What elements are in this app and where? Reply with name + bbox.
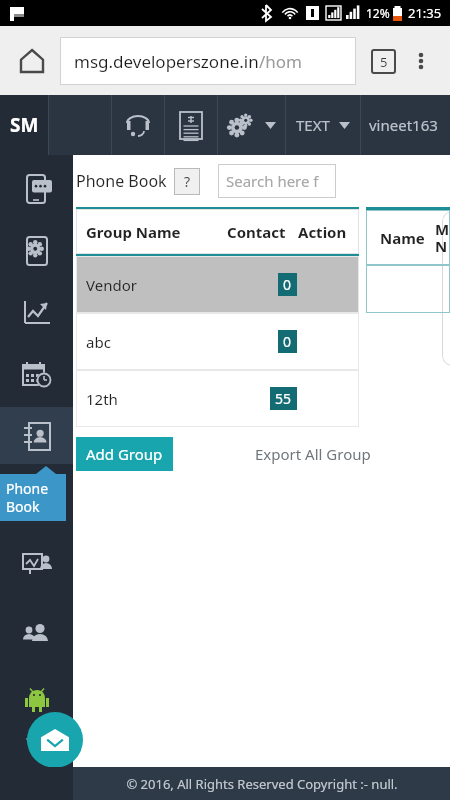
staticText: abc: [86, 332, 111, 352]
staticText: M N: [435, 219, 450, 257]
staticText: 55: [275, 389, 292, 408]
staticText: Add Group: [86, 444, 163, 464]
staticText: Phone Book: [76, 170, 167, 192]
staticText: Group Name: [86, 222, 181, 242]
button[interactable]: Add Group: [76, 437, 173, 471]
button[interactable]: Search here f: [218, 164, 336, 198]
staticText: TEXT: [296, 115, 330, 135]
staticText: msg.developerszone.in: [74, 50, 259, 73]
staticText: ?: [184, 172, 191, 191]
staticText: 0: [283, 332, 292, 351]
button[interactable]: Android App: [0, 674, 73, 726]
button[interactable]: ?: [174, 168, 200, 195]
staticText: 5: [380, 53, 388, 71]
staticText: Action: [298, 222, 347, 242]
button[interactable]: 12th: [76, 370, 359, 427]
staticText: 0: [283, 275, 292, 294]
button[interactable]: Live Monitor: [0, 538, 73, 590]
staticText: Contact: [227, 222, 286, 242]
staticText: 12th: [86, 389, 118, 409]
button[interactable]: Device Settings: [0, 225, 73, 277]
staticText: © 2016, All Rights Reserved Copyright :-…: [126, 775, 398, 793]
staticText: vineet163: [369, 115, 438, 135]
button[interactable]: Reports: [165, 95, 217, 155]
button[interactable]: More options: [404, 44, 438, 78]
button[interactable]: Messages: [0, 163, 73, 215]
button[interactable]: Vendor: [76, 256, 359, 313]
button[interactable]: Users: [0, 607, 73, 659]
button[interactable]: vineet163: [361, 95, 450, 155]
staticText: Search here f: [226, 171, 319, 191]
staticText: Export All Group: [255, 444, 371, 464]
button[interactable]: Home: [12, 41, 52, 81]
button[interactable]: msg.developerszone.in: [60, 37, 356, 85]
button[interactable]: Settings: [218, 95, 285, 155]
staticText: SM: [10, 112, 39, 138]
button[interactable]: TEXT: [286, 95, 360, 155]
staticText: 21:35: [408, 4, 442, 22]
button[interactable]: Phone Book: [0, 410, 73, 462]
staticText: Phone Book: [6, 479, 49, 516]
button[interactable]: SM: [0, 95, 48, 155]
staticText: Vendor: [86, 275, 137, 295]
button[interactable]: Scheduler: [0, 348, 73, 400]
button[interactable]: Reports: [0, 286, 73, 338]
button[interactable]: Tabs: 5: [366, 44, 400, 78]
button[interactable]: abc: [76, 313, 359, 370]
staticText: Ver: [26, 733, 48, 751]
staticText: 12%: [366, 5, 390, 21]
staticText: Name: [380, 228, 425, 248]
button[interactable]: Compose message: [27, 712, 83, 768]
staticText: /hom: [259, 50, 303, 73]
button[interactable]: Support: [112, 95, 164, 155]
button[interactable]: Phone Book: [0, 474, 66, 521]
button[interactable]: Export All Group: [251, 440, 375, 468]
